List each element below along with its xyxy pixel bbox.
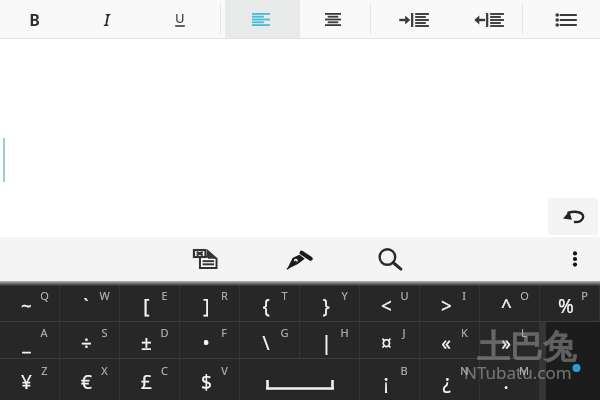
button[interactable]: Enter bbox=[546, 322, 600, 400]
button[interactable]: $ bbox=[180, 359, 240, 400]
button[interactable]: Decrease indent bbox=[450, 0, 525, 39]
staticText: % bbox=[558, 293, 574, 319]
staticText: W bbox=[99, 288, 110, 303]
staticText: T bbox=[281, 288, 288, 303]
button[interactable]: \ bbox=[240, 322, 300, 358]
staticText: O bbox=[520, 288, 529, 303]
staticText: > bbox=[441, 293, 452, 319]
staticText: { bbox=[262, 293, 270, 319]
button[interactable]: > bbox=[420, 286, 480, 321]
button[interactable]: ~ bbox=[0, 286, 60, 321]
button[interactable]: ¿ bbox=[420, 359, 480, 400]
button[interactable]: { bbox=[240, 286, 300, 321]
button[interactable]: » bbox=[480, 322, 540, 358]
button[interactable]: Bulleted list bbox=[525, 0, 600, 39]
staticText: £ bbox=[141, 369, 152, 395]
button[interactable]: ÷ bbox=[60, 322, 120, 358]
button[interactable]: Undo bbox=[548, 198, 598, 235]
staticText: S bbox=[101, 325, 108, 340]
button[interactable]: Search bbox=[369, 238, 411, 280]
staticText: \ bbox=[262, 330, 270, 356]
button[interactable]: Space bbox=[240, 359, 360, 400]
button[interactable]: ˋ bbox=[60, 286, 120, 321]
button[interactable]: « bbox=[420, 322, 480, 358]
staticText: ¤ bbox=[381, 330, 392, 356]
staticText: ¥ bbox=[21, 369, 32, 395]
button[interactable]: ^ bbox=[480, 286, 540, 321]
staticText: I bbox=[104, 9, 110, 31]
staticText: I bbox=[462, 288, 466, 303]
staticText: NTubatu.com bbox=[464, 361, 572, 384]
staticText: 土巴兔 bbox=[477, 326, 576, 368]
staticText: Z bbox=[41, 363, 48, 378]
staticText: . bbox=[503, 369, 509, 395]
button[interactable]: Clipboard bbox=[184, 238, 226, 280]
button[interactable]: ¤ bbox=[360, 322, 420, 358]
button[interactable]: % bbox=[540, 286, 600, 321]
button[interactable]: _ bbox=[0, 322, 60, 358]
staticText: B bbox=[29, 9, 40, 31]
staticText: ˋ bbox=[83, 293, 89, 319]
staticText: Y bbox=[341, 288, 348, 303]
staticText: X bbox=[101, 363, 108, 378]
button[interactable]: Bold bbox=[0, 0, 75, 39]
button[interactable]: Handwriting input bbox=[278, 238, 320, 280]
staticText: D bbox=[160, 325, 169, 340]
staticText: L bbox=[521, 325, 527, 340]
staticText: H bbox=[340, 325, 349, 340]
button[interactable]: € bbox=[60, 359, 120, 400]
staticText: _ bbox=[22, 330, 31, 356]
button[interactable]: ¥ bbox=[0, 359, 60, 400]
button[interactable]: } bbox=[300, 286, 360, 321]
button[interactable]: Align left bbox=[225, 0, 300, 39]
staticText: « bbox=[441, 330, 451, 356]
staticText: P bbox=[581, 288, 588, 303]
button[interactable]: Align center bbox=[300, 0, 375, 39]
staticText: € bbox=[81, 369, 92, 395]
button[interactable]: Underline bbox=[150, 0, 225, 39]
button[interactable]: | bbox=[300, 322, 360, 358]
staticText: ¿ bbox=[442, 369, 451, 395]
staticText: R bbox=[221, 288, 228, 303]
staticText: C bbox=[161, 363, 168, 378]
staticText: U bbox=[175, 9, 185, 27]
staticText: B bbox=[400, 363, 408, 378]
button[interactable]: Italic bbox=[75, 0, 150, 39]
button[interactable]: £ bbox=[120, 359, 180, 400]
staticText: » bbox=[501, 330, 511, 356]
button[interactable]: . bbox=[480, 359, 540, 400]
button[interactable]: ¡ bbox=[360, 359, 420, 400]
staticText: < bbox=[381, 293, 392, 319]
staticText: | bbox=[321, 330, 332, 356]
staticText: F bbox=[221, 325, 227, 340]
staticText: ¡ bbox=[383, 369, 389, 395]
staticText: [ bbox=[143, 293, 150, 319]
staticText: A bbox=[40, 325, 48, 340]
staticText: E bbox=[161, 288, 168, 303]
staticText: M bbox=[519, 363, 529, 378]
staticText: J bbox=[402, 325, 406, 340]
staticText: $ bbox=[201, 369, 212, 395]
staticText: U bbox=[400, 288, 409, 303]
staticText: ~ bbox=[21, 293, 32, 319]
staticText: Q bbox=[40, 288, 49, 303]
button[interactable]: • bbox=[180, 322, 240, 358]
staticText: ± bbox=[141, 330, 152, 356]
staticText: ] bbox=[203, 293, 210, 319]
button[interactable]: ± bbox=[120, 322, 180, 358]
staticText: G bbox=[280, 325, 289, 340]
button[interactable]: < bbox=[360, 286, 420, 321]
staticText: ÷ bbox=[81, 330, 92, 356]
staticText: K bbox=[461, 325, 468, 340]
other: Space bbox=[266, 380, 334, 390]
button[interactable]: [ bbox=[120, 286, 180, 321]
button[interactable]: ] bbox=[180, 286, 240, 321]
staticText: V bbox=[221, 363, 228, 378]
button[interactable]: Increase indent bbox=[375, 0, 450, 39]
staticText: N bbox=[460, 363, 469, 378]
staticText: } bbox=[322, 293, 330, 319]
staticText: • bbox=[202, 330, 210, 356]
button[interactable]: More options bbox=[554, 238, 596, 280]
staticText: ^ bbox=[501, 293, 512, 319]
